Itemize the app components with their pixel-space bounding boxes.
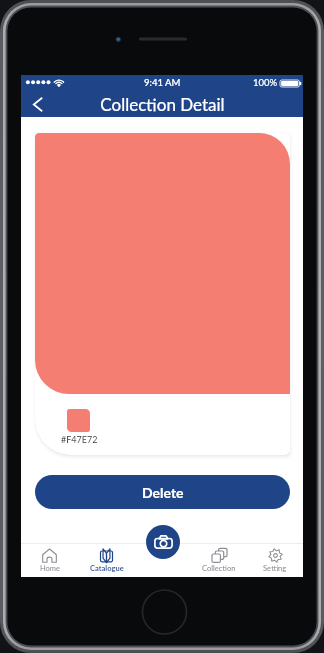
staticText: Setting bbox=[263, 564, 287, 573]
button[interactable]: #F47E72 bbox=[35, 133, 290, 455]
button[interactable]: Take photo bbox=[146, 525, 180, 559]
staticText: 9:41 AM bbox=[144, 77, 181, 88]
button[interactable]: Home bbox=[21, 543, 78, 577]
button[interactable]: Back bbox=[25, 91, 51, 117]
button[interactable]: Delete bbox=[35, 475, 290, 509]
button[interactable]: Catalogue bbox=[78, 543, 135, 577]
staticText: Collection bbox=[202, 564, 236, 573]
staticText: 100% bbox=[253, 77, 278, 88]
staticText: Collection Detail bbox=[100, 94, 225, 114]
staticText: #F47E72 bbox=[61, 434, 98, 445]
staticText: Home bbox=[40, 564, 60, 573]
staticText: Delete bbox=[142, 484, 184, 501]
button[interactable]: Collection bbox=[191, 543, 247, 577]
button[interactable]: Setting bbox=[247, 543, 303, 577]
staticText: Catalogue bbox=[90, 564, 124, 573]
